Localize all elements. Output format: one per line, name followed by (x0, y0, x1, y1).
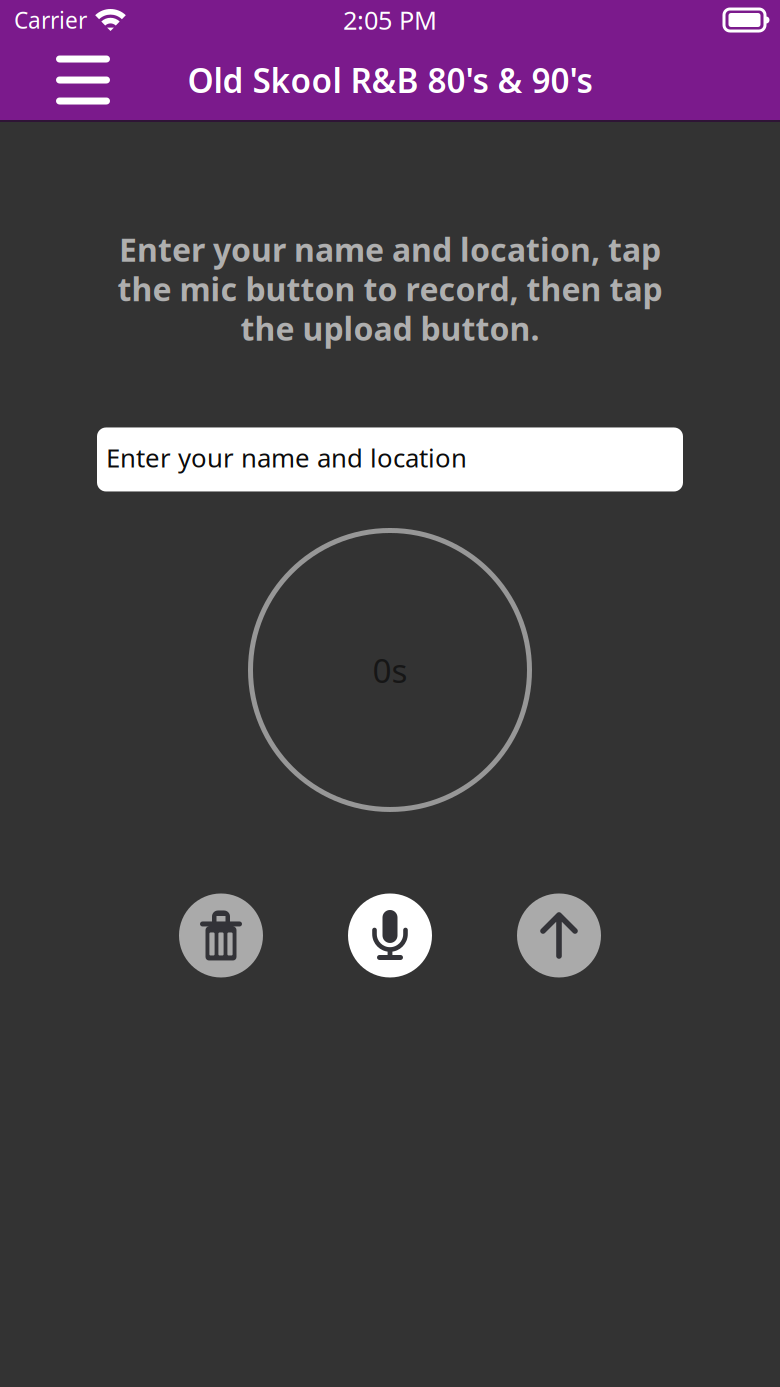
button[interactable]: Enter your name and location (97, 427, 683, 491)
staticText: Enter your name and location (106, 440, 467, 475)
staticText: the mic button to record, then tap (117, 267, 662, 310)
button[interactable]: Delete recording (179, 893, 263, 977)
staticText: the upload button. (240, 307, 539, 349)
button[interactable]: Upload (517, 893, 601, 977)
staticText: 0s (372, 648, 407, 692)
staticText: 2:05 PM (343, 3, 437, 37)
button[interactable]: Menu (0, 40, 136, 120)
staticText: Carrier (14, 5, 87, 35)
button[interactable]: Record (348, 893, 432, 977)
staticText: Enter your name and location, tap (119, 228, 661, 270)
staticText: Old Skool R&B 80's & 90's (187, 58, 592, 102)
